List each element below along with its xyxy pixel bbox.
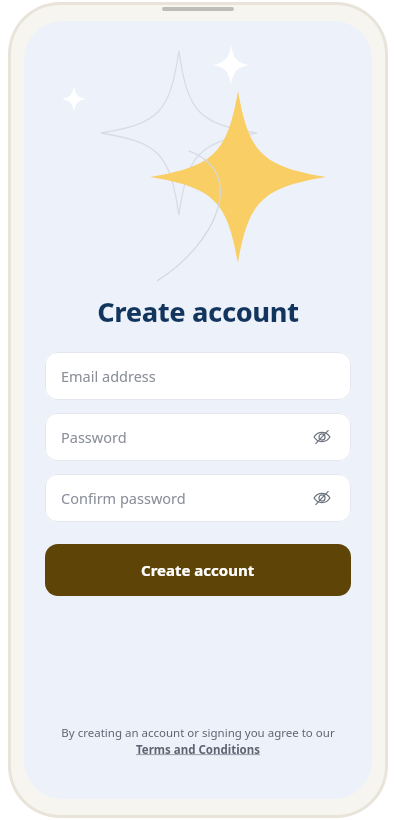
button[interactable]: Confirm password [45, 474, 351, 522]
staticText: Email address [61, 366, 335, 386]
button[interactable]: Email address [45, 352, 351, 400]
button[interactable]: By creating an account or signing you ag… [60, 725, 336, 757]
button[interactable]: Create account [45, 544, 351, 596]
staticText: By creating an account or signing you ag… [60, 725, 336, 757]
staticText: Confirm password [61, 488, 309, 508]
staticText: Create account [97, 293, 299, 330]
button[interactable]: Show password [309, 424, 335, 450]
button[interactable]: Password [45, 413, 351, 461]
button[interactable]: Show password [309, 485, 335, 511]
staticText: Password [61, 427, 309, 447]
staticText: Create account [141, 560, 255, 580]
